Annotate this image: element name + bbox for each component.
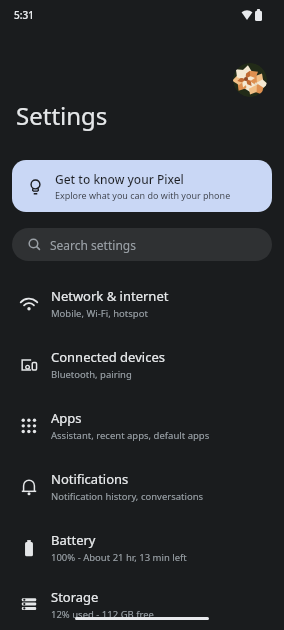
staticText: Search settings: [50, 237, 136, 253]
staticText: Network & internet: [51, 287, 169, 305]
staticText: Mobile, Wi-Fi, hotspot: [51, 307, 148, 320]
staticText: 12% used - 112 GB free: [51, 608, 154, 621]
button[interactable]: Battery: [0, 517, 284, 578]
staticText: Notification history, conversations: [51, 490, 204, 503]
staticText: Bluetooth, pairing: [51, 368, 132, 381]
staticText: Apps: [51, 409, 82, 427]
button[interactable]: Apps: [0, 395, 284, 456]
staticText: Get to know your Pixel: [55, 171, 184, 187]
staticText: Notifications: [51, 470, 129, 488]
staticText: Battery: [51, 531, 96, 549]
button[interactable]: Connected devices: [0, 334, 284, 395]
staticText: 5:31: [14, 8, 34, 22]
staticText: Assistant, recent apps, default apps: [51, 429, 210, 442]
staticText: Connected devices: [51, 348, 165, 366]
button[interactable]: Get to know your Pixel: [12, 160, 272, 212]
staticText: Storage: [51, 588, 99, 606]
button[interactable]: [233, 63, 267, 97]
staticText: Settings: [16, 99, 108, 132]
button[interactable]: Search settings: [12, 228, 272, 261]
staticText: 100% - About 21 hr, 13 min left: [51, 551, 187, 564]
button[interactable]: Notifications: [0, 456, 284, 517]
button[interactable]: Network & internet: [0, 273, 284, 334]
staticText: Explore what you can do with your phone: [55, 189, 231, 201]
button[interactable]: Storage: [0, 578, 284, 630]
